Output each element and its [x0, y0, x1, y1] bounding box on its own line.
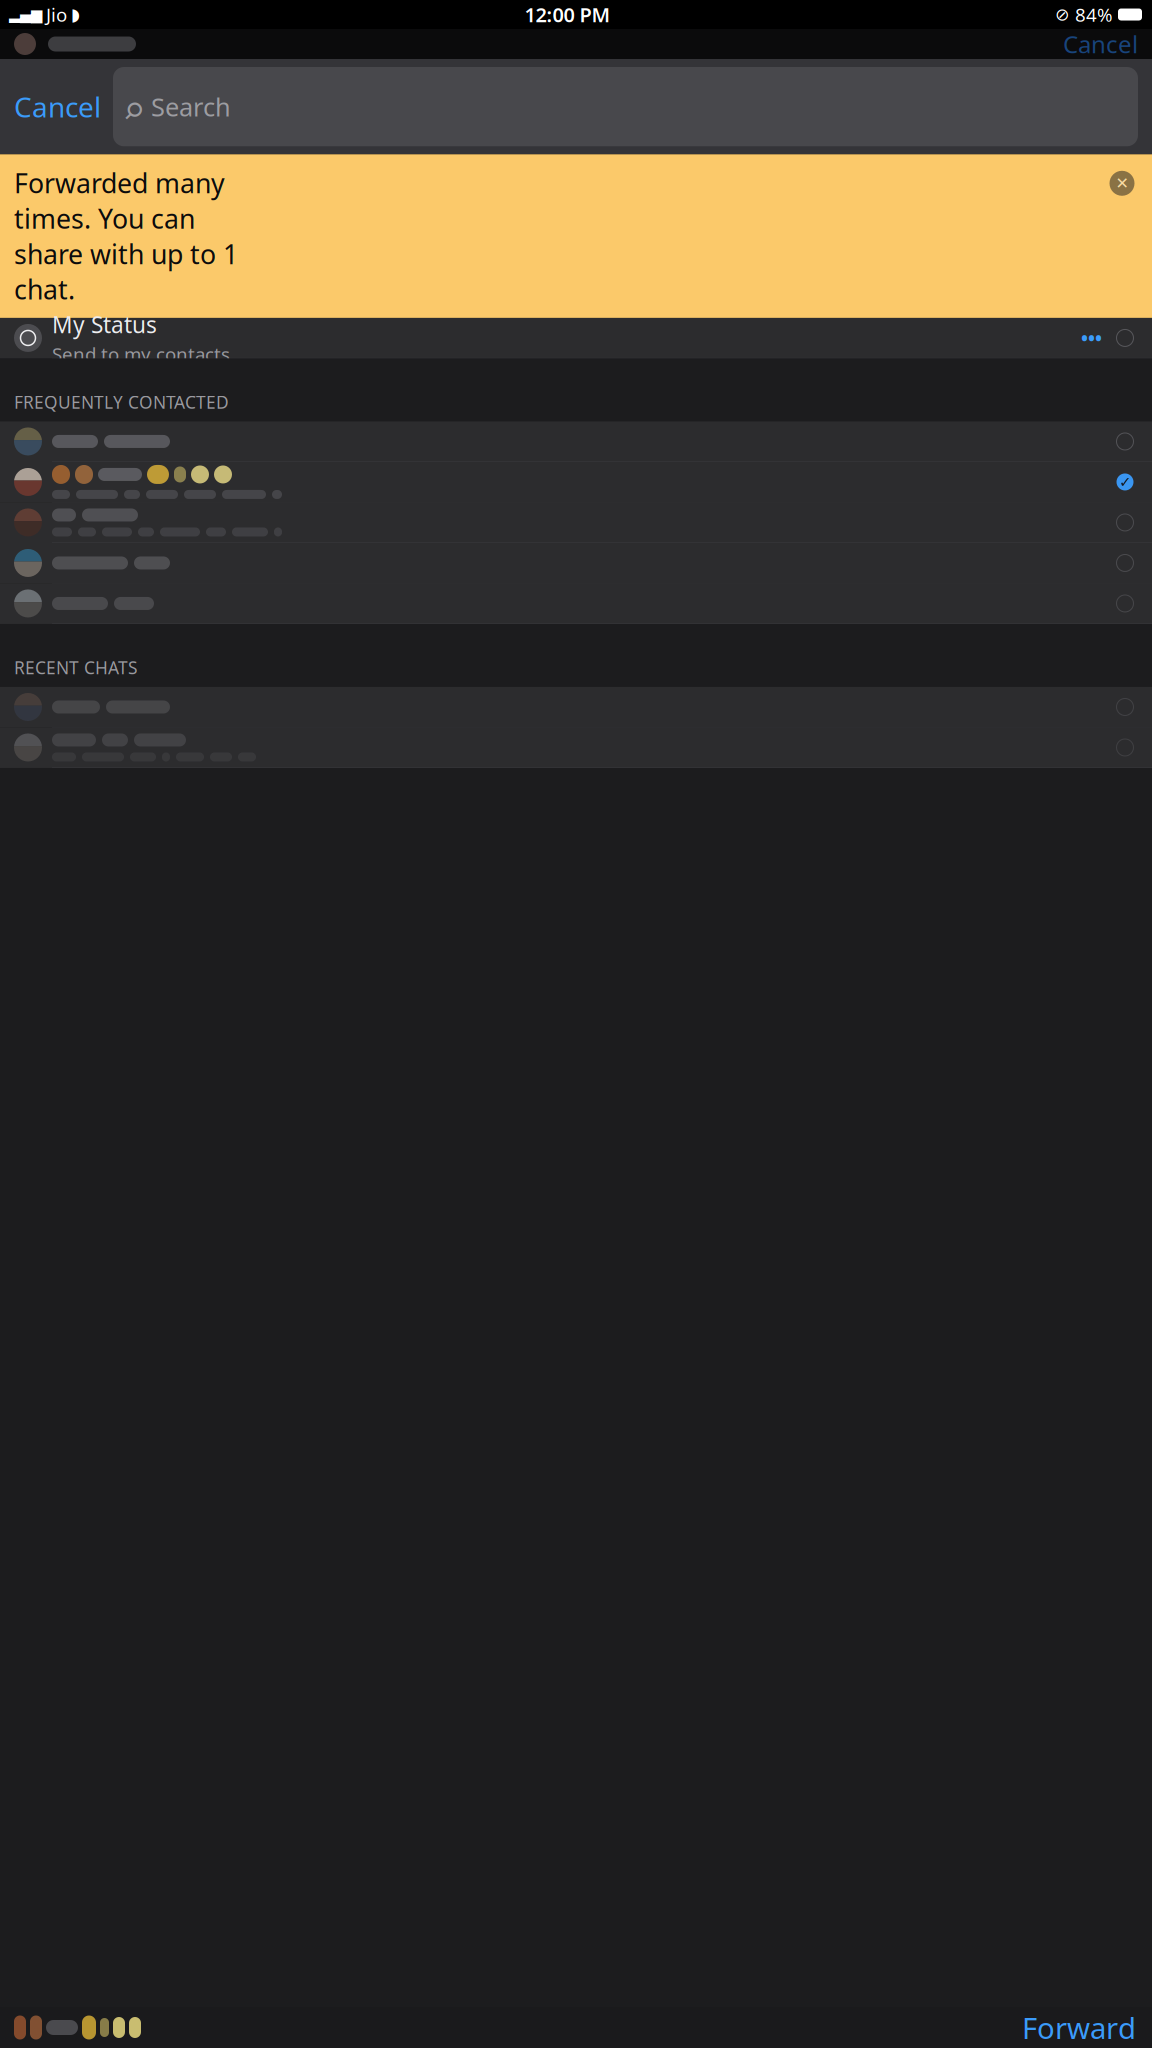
staticText: ✕	[1115, 174, 1128, 192]
button[interactable]: ⌕	[113, 67, 1138, 146]
staticText: 12:00 PM	[524, 1, 610, 28]
button[interactable]	[0, 687, 1152, 727]
staticText: 84%	[1075, 2, 1113, 27]
button[interactable]	[0, 727, 1152, 768]
staticText: Search	[151, 90, 231, 123]
button[interactable]: My Status	[0, 318, 1152, 358]
staticText: RECENT CHATS	[14, 656, 138, 679]
staticText: ▂▄▆	[9, 6, 42, 23]
staticText: FREQUENTLY CONTACTED	[14, 390, 229, 413]
staticText: ⌕	[124, 76, 143, 137]
button[interactable]	[0, 502, 1152, 543]
staticText: Jio	[46, 2, 67, 27]
staticText: Forwarded many times. You can share with…	[14, 165, 238, 307]
staticText: ✓	[1119, 474, 1131, 490]
button[interactable]: Forward	[1022, 1998, 1152, 2048]
button[interactable]: Dismiss banner	[1104, 165, 1140, 201]
staticText: ◗	[71, 5, 80, 24]
staticText: Cancel	[14, 88, 101, 125]
button[interactable]: Cancel	[0, 78, 105, 135]
staticText: My Status	[52, 309, 157, 340]
button[interactable]	[0, 543, 1152, 583]
staticText: Forward	[1022, 2008, 1136, 2047]
button[interactable]: ✓	[0, 462, 1152, 502]
staticText: ⊘	[1055, 5, 1070, 24]
staticText: •••	[1081, 326, 1102, 350]
staticText: Cancel	[1063, 28, 1138, 60]
staticText: Send to my contacts	[52, 342, 230, 366]
button[interactable]	[0, 583, 1152, 624]
button[interactable]	[0, 421, 1152, 462]
